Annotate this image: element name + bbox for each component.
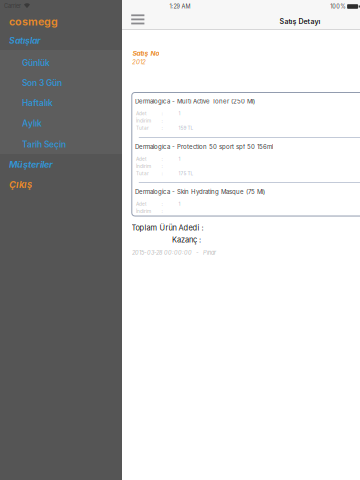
staticText: İndirim (136, 208, 151, 214)
button[interactable]: Son 3 Gün (0, 0, 122, 93)
staticText: Satış Detayı (279, 17, 320, 26)
staticText: Adet (136, 111, 147, 116)
staticText: 2012 (132, 58, 146, 66)
staticText: : (162, 163, 163, 169)
button[interactable]: Müşteriler (0, 0, 122, 174)
staticText: Son 3 Gün (22, 78, 62, 88)
staticText: 175 TL (178, 171, 193, 176)
staticText: : (162, 156, 163, 162)
button[interactable]: Tarih Seçin (0, 0, 122, 154)
staticText: Carrier (4, 3, 21, 9)
button[interactable]: Aylık (0, 0, 122, 133)
staticText: : (162, 118, 163, 124)
button[interactable]: Dermalogica - Skin Hydrating Masque (75 … (132, 183, 360, 216)
staticText: Dermalogica - Skin Hydrating Masque (75 … (135, 188, 265, 195)
staticText: : (162, 125, 163, 131)
staticText: Aylık (22, 118, 42, 129)
button[interactable]: Günlük (0, 0, 122, 73)
staticText: : (162, 208, 163, 214)
button[interactable]: Haftalık (0, 0, 122, 113)
staticText: Günlük (22, 58, 50, 68)
button[interactable]: Dermalogica - Protection 50 sport spf 50… (132, 138, 360, 182)
staticText: 159 TL (178, 125, 193, 131)
staticText: Müşteriler (9, 159, 53, 170)
staticText: Dermalogica - Multi Active Toner (250 Ml… (135, 98, 255, 105)
staticText: 1 (178, 201, 180, 207)
staticText: cosmegg (9, 15, 58, 28)
staticText: Tarih Seçin (22, 139, 66, 150)
staticText: 2015-03-28 00:00:00 - Pınar (132, 249, 216, 256)
staticText: Kazanç : (172, 235, 201, 244)
button[interactable]: Menu (122, 0, 156, 30)
staticText: Çıkış (9, 179, 32, 190)
button[interactable]: Satışlar (0, 0, 122, 50)
staticText: Tutar (136, 125, 149, 131)
staticText: : (162, 171, 163, 176)
staticText: 100% (330, 3, 345, 10)
staticText: Tutar (136, 171, 149, 176)
staticText: Toplam Ürün Adedi : (132, 223, 204, 232)
staticText: Dermalogica - Protection 50 sport spf 50… (135, 143, 273, 150)
staticText: 1 (178, 156, 180, 162)
staticText: 1 (178, 111, 180, 116)
button[interactable]: cosmegg (0, 0, 122, 28)
staticText: Haftalık (22, 98, 53, 108)
staticText: : (162, 111, 163, 116)
staticText: : (162, 201, 163, 207)
staticText: İndirim (136, 163, 151, 169)
button[interactable]: Çıkış (0, 0, 122, 194)
staticText: 1:29 AM (169, 3, 190, 10)
staticText: Adet (136, 201, 147, 207)
staticText: Satış No (132, 49, 159, 57)
staticText: Adet (136, 156, 147, 162)
staticText: İndirim (136, 118, 151, 124)
button[interactable]: Dermalogica - Multi Active Toner (250 Ml… (132, 92, 360, 137)
staticText: Satışlar (9, 35, 41, 46)
